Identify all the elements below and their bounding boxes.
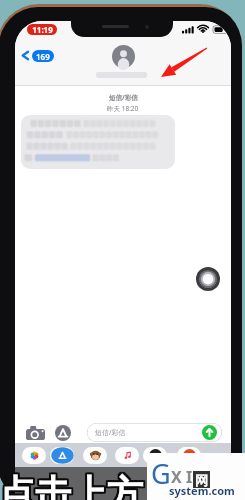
button[interactable]: Memoji bbox=[83, 447, 107, 464]
staticText: 点击上方 bbox=[1, 472, 145, 500]
staticText: 短信/彩信 bbox=[109, 93, 138, 102]
button[interactable]: Photos bbox=[22, 447, 46, 464]
staticText: G bbox=[151, 455, 171, 492]
staticText: 点击上方 bbox=[0, 471, 143, 500]
staticText: 点击上方 bbox=[0, 469, 143, 500]
button[interactable]: Music bbox=[115, 447, 139, 464]
staticText: 点击上方 bbox=[0, 470, 144, 500]
staticText: 短信/彩信 bbox=[95, 428, 126, 438]
staticText: 点击上方 bbox=[1, 469, 145, 500]
button[interactable]: Contact avatar bbox=[112, 45, 135, 68]
staticText: 点击上方 bbox=[0, 472, 142, 500]
staticText: system.com bbox=[169, 483, 235, 498]
staticText: 点击上方 bbox=[0, 469, 142, 500]
staticText: 点击上方 bbox=[1, 470, 145, 500]
staticText: 点击上方 bbox=[0, 473, 144, 500]
staticText: 点击上方 bbox=[0, 473, 142, 500]
button[interactable]: Back, 169 unread bbox=[18, 47, 56, 64]
button[interactable] bbox=[21, 115, 175, 169]
staticText: 11:19 bbox=[32, 24, 53, 35]
staticText: 点击上方 bbox=[0, 473, 141, 500]
button[interactable]: Apps bbox=[143, 447, 167, 464]
staticText: 点击上方 bbox=[0, 472, 144, 500]
staticText: 点击上方 bbox=[1, 471, 145, 500]
staticText: 点击上方 bbox=[1, 473, 145, 500]
staticText: 点击上方 bbox=[0, 470, 142, 500]
button[interactable]: Send bbox=[202, 425, 217, 440]
staticText: 点击上方 bbox=[0, 473, 143, 500]
button[interactable]: App Store bbox=[50, 447, 74, 464]
staticText: 点击上方 bbox=[0, 471, 144, 500]
button[interactable]: Camera bbox=[26, 426, 45, 440]
staticText: 网 bbox=[195, 472, 208, 488]
button[interactable]: 短信/彩信 bbox=[87, 423, 222, 442]
staticText: 点击上方 bbox=[0, 470, 141, 500]
staticText: 点击上方 bbox=[0, 469, 141, 500]
staticText: 169 bbox=[36, 51, 50, 62]
staticText: 点击上方 bbox=[0, 470, 143, 500]
staticText: X I bbox=[171, 466, 193, 488]
staticText: 点击上方 bbox=[0, 469, 144, 500]
button[interactable]: More bbox=[177, 447, 201, 464]
staticText: 昨天 18:20 bbox=[107, 104, 139, 113]
button[interactable]: AssistiveTouch bbox=[196, 267, 220, 291]
button[interactable]: App Store bbox=[55, 425, 71, 441]
staticText: 点击上方 bbox=[0, 472, 143, 500]
staticText: 点击上方 bbox=[0, 471, 142, 500]
staticText: 点击上方 bbox=[0, 472, 141, 500]
staticText: 点击上方 bbox=[0, 471, 141, 500]
